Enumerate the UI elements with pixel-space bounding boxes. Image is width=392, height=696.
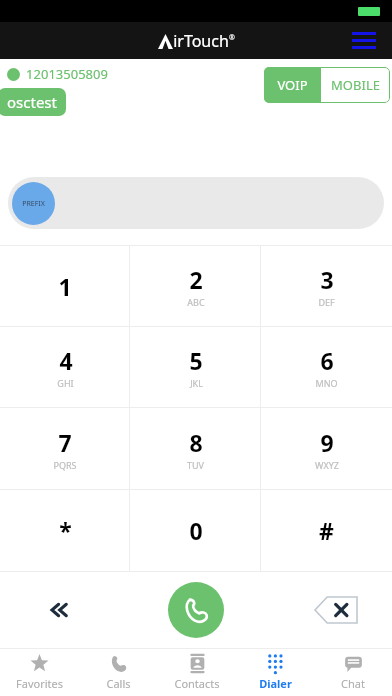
button[interactable]: osctest [0,88,66,116]
staticText: osctest [7,92,57,112]
staticText: PREFIX [22,199,45,209]
staticText: 1 [58,271,72,302]
button[interactable]: Menu [346,26,382,55]
staticText: 3 [320,264,334,295]
button[interactable]: Previous [42,590,82,630]
button[interactable]: 7 [0,408,130,489]
button[interactable]: 9 [261,408,392,489]
staticText: irTouch [173,30,229,52]
staticText: 0 [189,515,203,546]
button[interactable]: VOIP [264,67,321,103]
button[interactable]: Contacts [158,649,236,696]
staticText: TUV [187,459,204,471]
staticText: GHI [57,377,74,389]
staticText: 2 [189,264,203,295]
staticText: Chat [341,676,365,691]
staticText: 4 [59,345,73,376]
staticText: DEF [318,296,335,308]
staticText: 7 [58,427,72,458]
staticText: * [59,515,72,546]
staticText: 8 [189,427,203,458]
staticText: Dialer [259,676,292,691]
staticText: VOIP [277,76,308,94]
staticText: JKL [190,377,203,389]
staticText: WXYZ [315,459,339,471]
button[interactable]: Dialer [236,649,314,696]
button[interactable] [8,177,384,229]
button[interactable]: Calls [79,649,158,696]
staticText: PQRS [53,459,77,471]
staticText: MNO [315,377,338,389]
button[interactable]: PREFIX [12,182,55,225]
button[interactable]: Favorites [0,649,79,696]
button[interactable]: * [0,490,130,571]
button[interactable]: # [261,490,392,571]
button[interactable]: Call [168,582,224,638]
button[interactable]: 1 [0,246,130,326]
staticText: 9 [320,427,334,458]
button[interactable]: 4 [0,327,130,407]
staticText: Calls [106,676,131,691]
staticText: 5 [189,345,203,376]
staticText: 6 [320,345,334,376]
button[interactable]: 2 [130,246,261,326]
button[interactable]: 8 [130,408,261,489]
button[interactable]: Chat [314,649,392,696]
button[interactable]: Delete [306,588,366,632]
staticText: Contacts [174,676,220,691]
staticText: ® [229,33,235,43]
staticText: 12013505809 [26,65,108,83]
button[interactable]: 5 [130,327,261,407]
button[interactable]: 0 [130,490,261,571]
staticText: MOBILE [331,76,380,94]
staticText: Favorites [16,676,63,691]
button[interactable]: MOBILE [321,67,390,103]
button[interactable]: 3 [261,246,392,326]
staticText: ABC [187,296,205,308]
button[interactable]: 6 [261,327,392,407]
staticText: # [319,515,334,546]
